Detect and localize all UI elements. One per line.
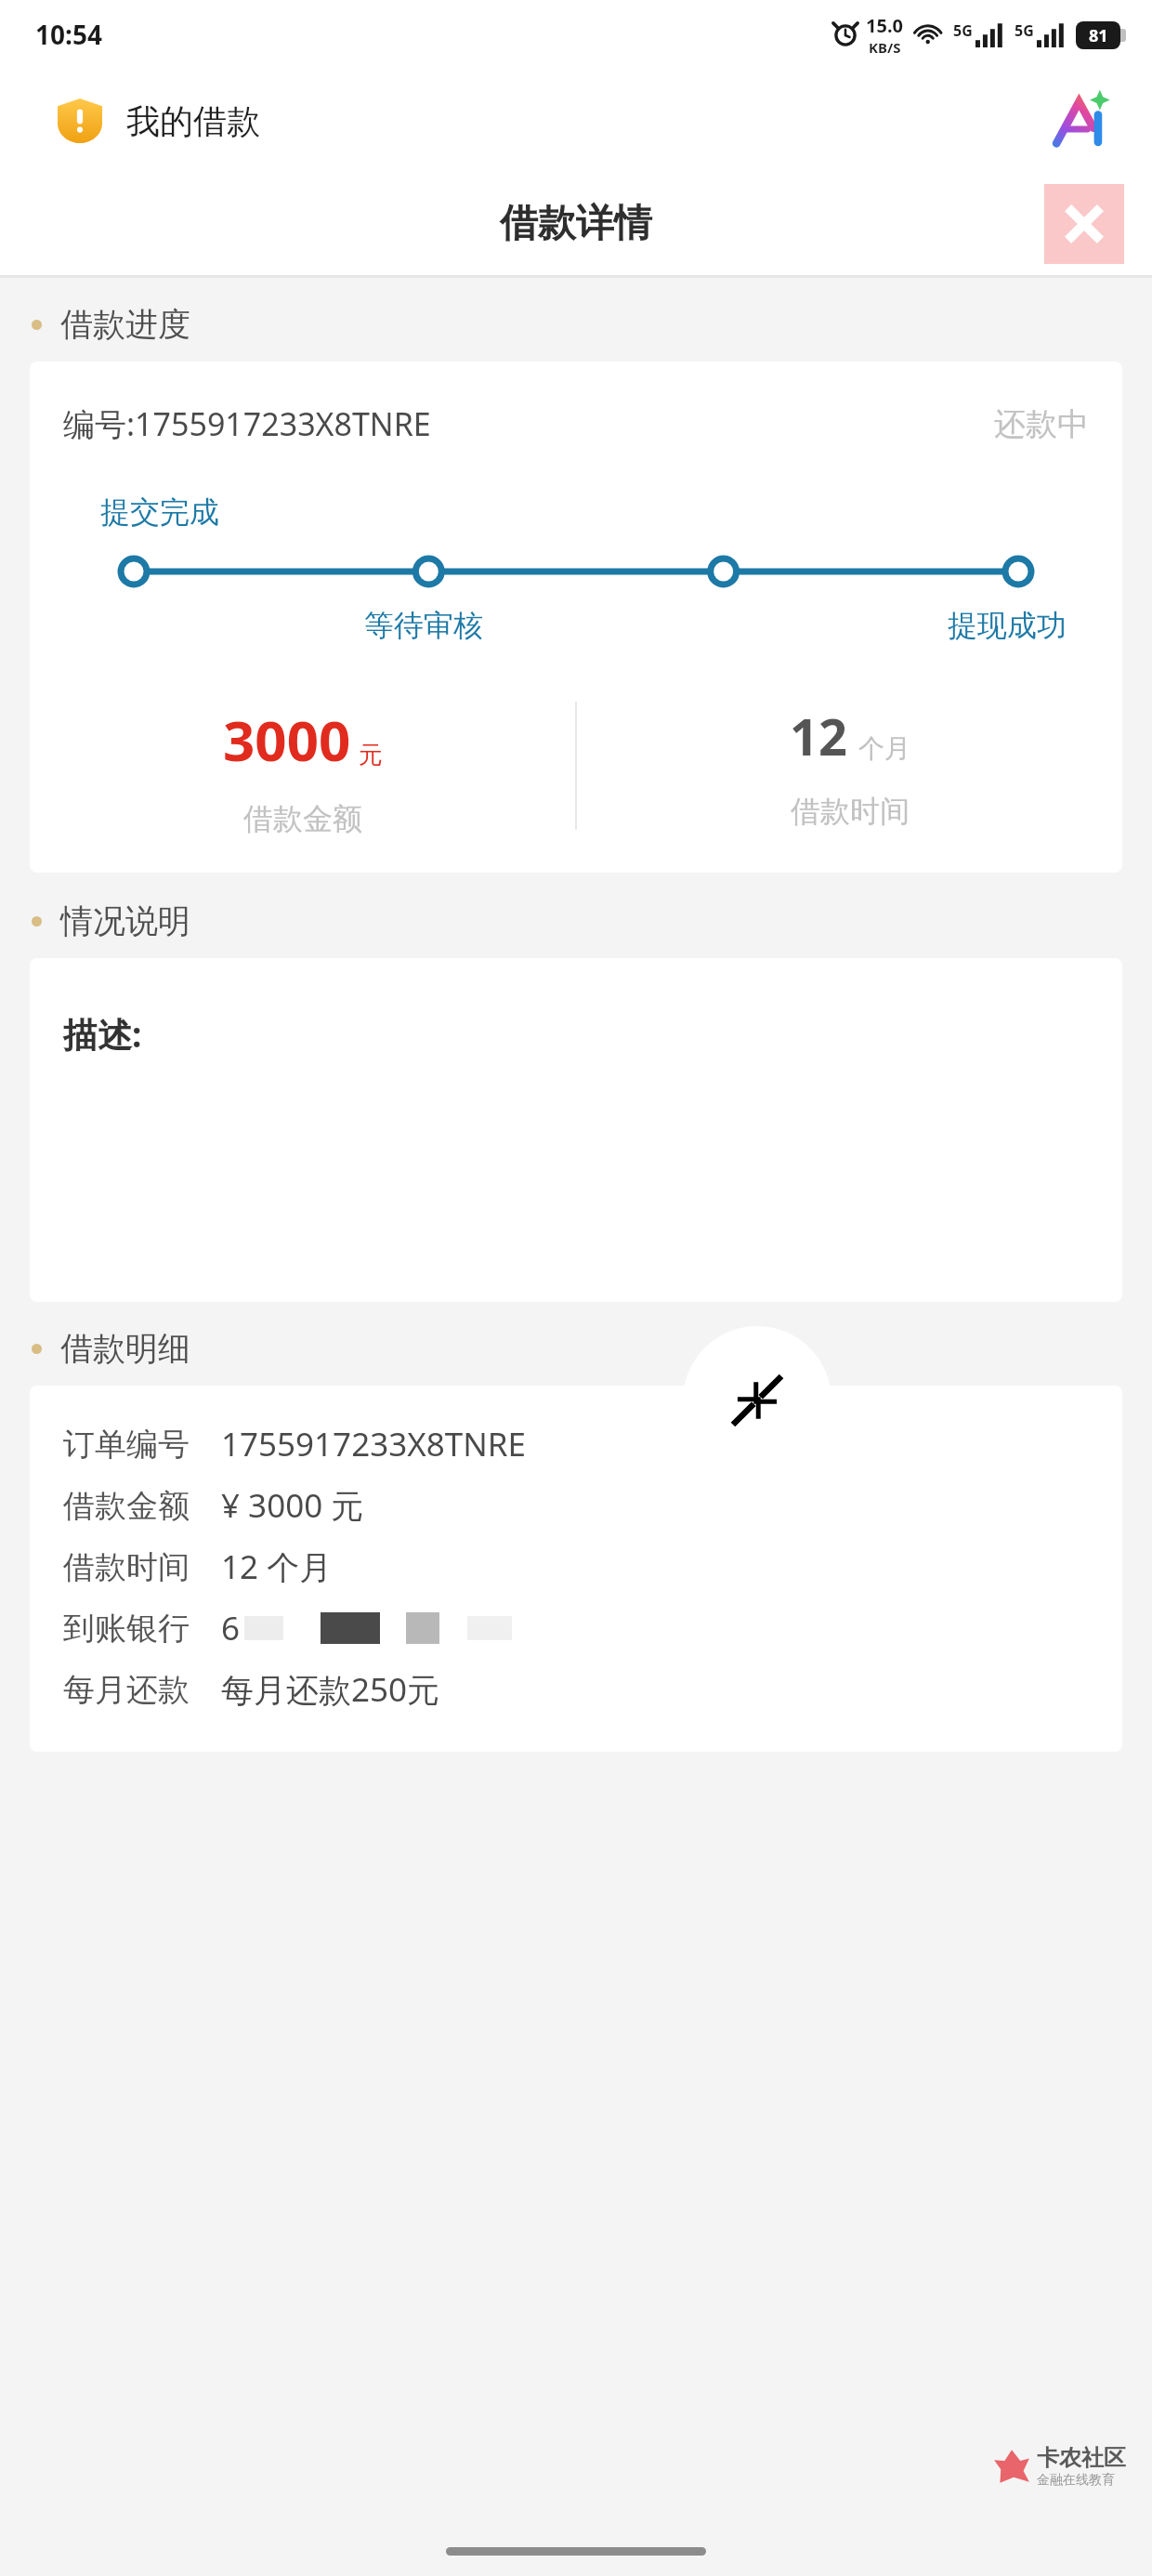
- staticText: 15.0: [866, 13, 903, 38]
- staticText: 我的借款: [126, 100, 260, 142]
- staticText: 借款金额: [243, 800, 362, 837]
- staticText: 编号:1755917233X8TNRE: [63, 402, 994, 445]
- button[interactable]: 我的借款: [58, 99, 260, 143]
- staticText: 金融在线教育: [1037, 2472, 1115, 2489]
- staticText: 还款中: [994, 404, 1089, 444]
- staticText: 借款详情: [500, 200, 652, 248]
- staticText: 每月还款: [63, 1670, 190, 1710]
- staticText: 6: [221, 1606, 241, 1650]
- staticText: 借款明细: [60, 1328, 190, 1369]
- staticText: 1755917233X8TNRE: [221, 1422, 527, 1466]
- staticText: 卡农社区: [1037, 2444, 1126, 2472]
- staticText: 情况说明: [60, 900, 190, 941]
- staticText: 借款时间: [791, 793, 910, 830]
- staticText: 提现成功: [948, 607, 1067, 644]
- button[interactable]: 收起: [683, 1326, 831, 1475]
- staticText: 订单编号: [63, 1425, 190, 1465]
- staticText: 12 个月: [221, 1544, 333, 1589]
- staticText: 借款金额: [63, 1486, 190, 1526]
- staticText: 个月: [858, 732, 910, 765]
- staticText: 5G: [953, 20, 973, 41]
- staticText: KB/S: [869, 38, 901, 57]
- staticText: 等待审核: [364, 607, 483, 644]
- staticText: ¥ 3000 元: [221, 1483, 364, 1528]
- staticText: 提交完成: [100, 493, 219, 531]
- staticText: 5G: [1015, 20, 1034, 41]
- staticText: 借款进度: [60, 304, 190, 345]
- staticText: 到账银行: [63, 1609, 190, 1649]
- staticText: 描述:: [63, 1010, 142, 1058]
- staticText: 3000: [223, 702, 351, 778]
- staticText: 每月还款250元: [221, 1667, 440, 1712]
- staticText: 元: [359, 740, 383, 770]
- button[interactable]: 关闭: [1044, 184, 1124, 264]
- staticText: 借款时间: [63, 1547, 190, 1587]
- staticText: 12: [790, 702, 847, 770]
- staticText: 10:54: [35, 17, 102, 52]
- button[interactable]: AI 助手: [1052, 91, 1111, 151]
- staticText: 81: [1089, 24, 1108, 47]
